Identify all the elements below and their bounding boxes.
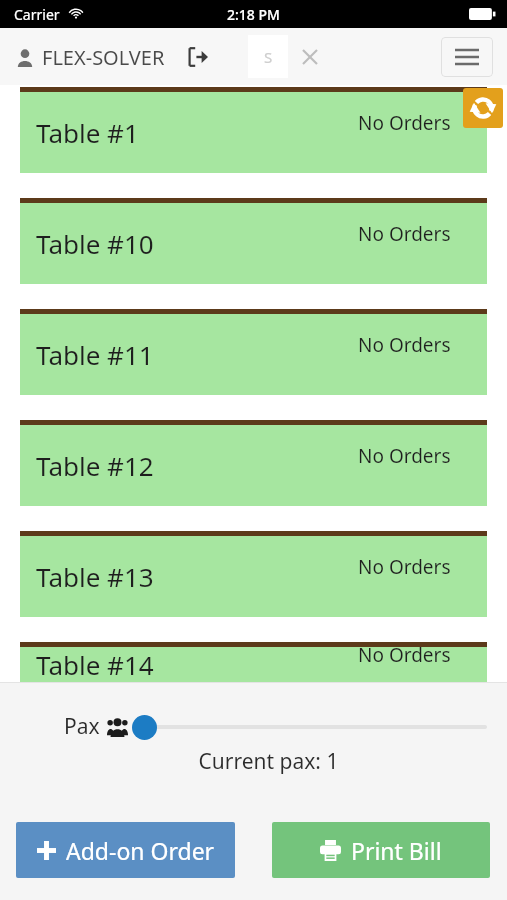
- button[interactable]: Table #1: [20, 87, 487, 173]
- staticText: No Orders: [358, 332, 451, 358]
- button[interactable]: Pax slider: [132, 713, 487, 741]
- staticText: Table #10: [36, 226, 154, 261]
- staticText: 2:18 PM: [227, 5, 280, 24]
- button[interactable]: Table #14: [20, 642, 487, 682]
- staticText: S: [264, 47, 273, 67]
- staticText: Table #14: [36, 647, 154, 682]
- staticText: Table #11: [36, 337, 154, 372]
- staticText: Print Bill: [351, 835, 442, 866]
- button[interactable]: Menu: [441, 37, 493, 77]
- staticText: No Orders: [358, 554, 451, 580]
- button[interactable]: Table #10: [20, 198, 487, 284]
- button[interactable]: Add-on Order: [16, 822, 235, 878]
- button[interactable]: Table #11: [20, 309, 487, 395]
- button[interactable]: Sign out: [183, 42, 213, 72]
- button[interactable]: Close tab: [296, 43, 324, 71]
- button[interactable]: Table #12: [20, 420, 487, 506]
- staticText: FLEX-SOLVER: [42, 44, 165, 71]
- staticText: Current pax: 1: [30, 747, 507, 776]
- button[interactable]: Refresh: [463, 88, 503, 128]
- staticText: Table #13: [36, 559, 154, 594]
- staticText: No Orders: [358, 221, 451, 247]
- staticText: No Orders: [358, 110, 451, 136]
- button[interactable]: FLEX-SOLVER: [16, 44, 165, 71]
- staticText: Carrier: [14, 5, 60, 24]
- button[interactable]: Print Bill: [272, 822, 490, 878]
- staticText: Table #1: [36, 115, 139, 150]
- button[interactable]: Table #13: [20, 531, 487, 617]
- button[interactable]: S: [248, 35, 288, 78]
- staticText: No Orders: [358, 642, 451, 668]
- staticText: Table #12: [36, 448, 154, 483]
- staticText: Add-on Order: [66, 835, 215, 866]
- staticText: Pax: [64, 712, 100, 741]
- staticText: No Orders: [358, 443, 451, 469]
